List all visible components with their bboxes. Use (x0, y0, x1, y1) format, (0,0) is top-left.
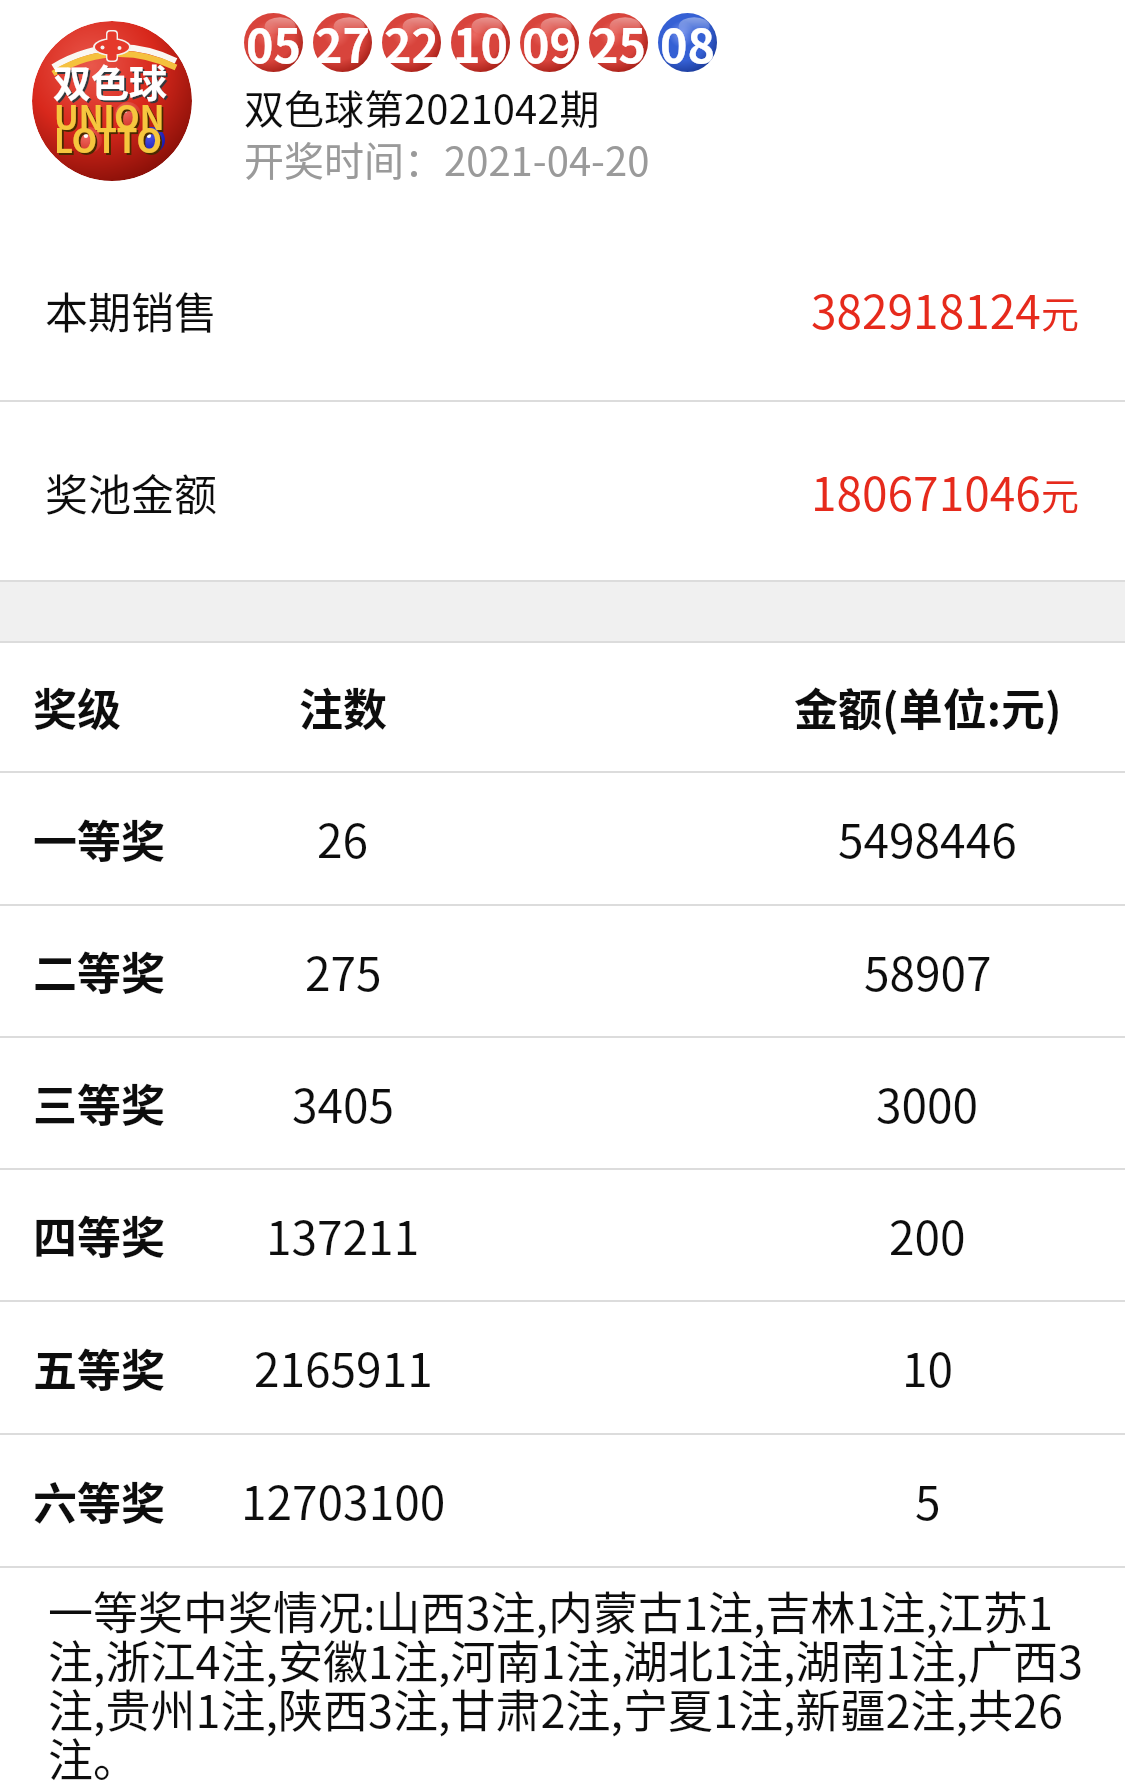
staticText: 27 (315, 9, 370, 68)
staticText: 奖池金额 (45, 461, 217, 523)
button[interactable]: 六等奖 (0, 1435, 1125, 1566)
staticText: 元 (1041, 466, 1080, 521)
staticText: 双色球 (55, 55, 170, 110)
button[interactable]: 三等奖 (0, 1038, 1125, 1168)
staticText: 注数 (299, 675, 387, 739)
staticText: 一等奖中奖情况:山西3注,内蒙古1注,吉林1注,江苏1 注,浙江4注,安徽1注,… (48, 1578, 1083, 1787)
button[interactable]: 二等奖 (0, 906, 1125, 1036)
staticText: 09 (522, 9, 577, 68)
staticText: 275 (305, 938, 382, 1005)
staticText: 5 (915, 1467, 941, 1534)
staticText: 奖级 (33, 675, 121, 739)
staticText: 137211 (266, 1202, 420, 1269)
staticText: 08 (660, 9, 715, 68)
staticText: 25 (591, 9, 646, 68)
staticText: 2165911 (254, 1334, 433, 1401)
staticText: 2021-04-20 (444, 130, 650, 188)
button[interactable]: 双色球 Union Lotto logo (32, 21, 192, 181)
staticText: 3000 (876, 1070, 979, 1137)
button[interactable]: 一等奖 (0, 773, 1125, 904)
staticText: 5498446 (838, 805, 1017, 872)
staticText: 本期销售 (45, 279, 217, 341)
staticText: 22 (384, 9, 439, 68)
staticText: 六等奖 (33, 1469, 165, 1533)
staticText: LOTTO (56, 117, 164, 165)
staticText: UNION (56, 94, 167, 142)
staticText: 05 (246, 9, 301, 68)
staticText: UNION (54, 92, 165, 140)
staticText: 金额(单位:元) (794, 675, 1062, 739)
staticText: 元 (1041, 284, 1080, 339)
button[interactable]: 双色球 Union Lotto logo (0, 0, 1125, 219)
staticText: 五等奖 (33, 1336, 165, 1400)
staticText: 双色球第2021042期 (244, 78, 600, 136)
staticText: 开奖时间： (244, 130, 444, 188)
button[interactable]: 五等奖 (0, 1302, 1125, 1433)
staticText: 58907 (864, 938, 992, 1005)
staticText: 双色球 (53, 53, 168, 108)
staticText: 四等奖 (33, 1203, 165, 1267)
staticText: 3405 (292, 1070, 395, 1137)
button[interactable]: 奖池金额 (0, 402, 1125, 580)
staticText: 12703100 (241, 1467, 446, 1534)
staticText: 180671046 (811, 458, 1041, 525)
staticText: 382918124 (811, 276, 1041, 343)
staticText: 10 (453, 9, 508, 68)
button[interactable]: 四等奖 (0, 1170, 1125, 1300)
staticText: 二等奖 (33, 939, 165, 1003)
staticText: 200 (889, 1202, 966, 1269)
staticText: 一等奖 (33, 807, 165, 871)
staticText: 26 (317, 805, 369, 872)
staticText: 三等奖 (33, 1071, 165, 1135)
staticText: 10 (902, 1334, 954, 1401)
button[interactable]: 本期销售 (0, 219, 1125, 400)
staticText: LOTTO (54, 115, 162, 163)
button[interactable]: 奖级 (0, 643, 1125, 771)
